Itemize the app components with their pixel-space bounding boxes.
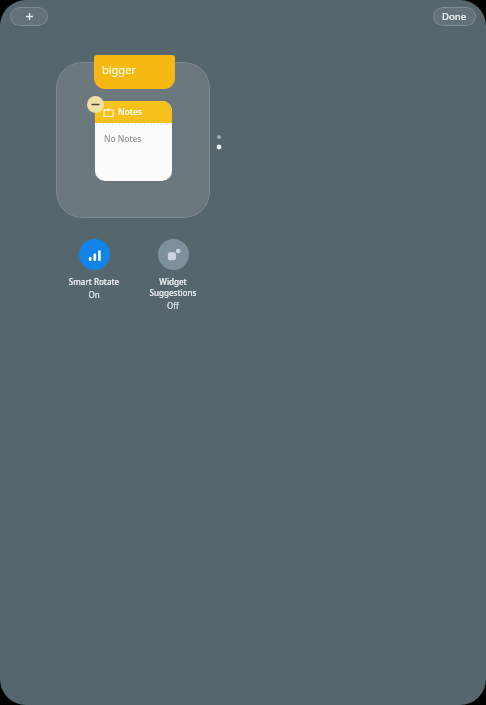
staticText: Widget Suggestions (141, 276, 205, 298)
button[interactable]: Notes (95, 101, 172, 181)
button[interactable]: Add widget (10, 7, 48, 26)
staticText: Done (442, 10, 467, 23)
staticText: On (62, 289, 126, 300)
button[interactable]: Widget Suggestions (141, 239, 205, 311)
staticText: Off (141, 300, 205, 311)
staticText: No Notes (104, 133, 142, 145)
button[interactable]: Done (433, 7, 476, 26)
staticText: Smart Rotate (62, 276, 126, 287)
button[interactable]: Smart Rotate (62, 239, 126, 300)
button[interactable]: Remove widget (87, 96, 104, 113)
staticText: bigger (102, 62, 136, 77)
button[interactable] (56, 62, 210, 218)
staticText: Notes (118, 106, 143, 118)
button[interactable]: bigger (94, 55, 175, 89)
